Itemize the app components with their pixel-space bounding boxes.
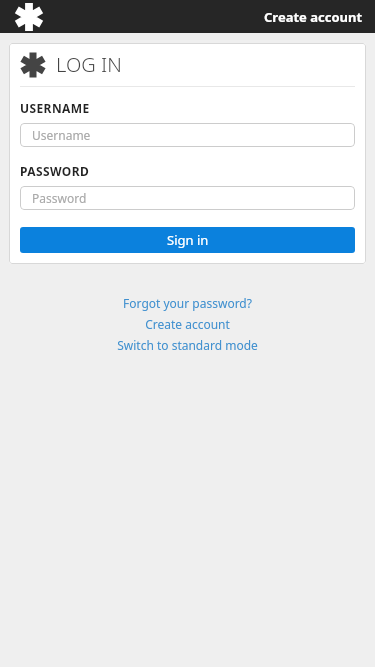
staticText: Switch to standard mode bbox=[117, 337, 258, 353]
button[interactable]: Forgot your password? bbox=[0, 295, 375, 311]
staticText: Create account bbox=[145, 316, 230, 332]
staticText: USERNAME bbox=[20, 100, 90, 116]
button[interactable]: Username bbox=[20, 123, 355, 147]
staticText: Create account bbox=[264, 8, 363, 26]
staticText: Forgot your password? bbox=[123, 295, 252, 311]
staticText: Sign in bbox=[167, 231, 209, 249]
button[interactable]: Create account bbox=[252, 2, 375, 32]
button[interactable]: Sign in bbox=[20, 227, 355, 253]
staticText: Username bbox=[32, 127, 91, 143]
staticText: Password bbox=[32, 190, 87, 206]
button[interactable]: Switch to standard mode bbox=[0, 337, 375, 353]
staticText: PASSWORD bbox=[20, 163, 90, 179]
button[interactable]: Create account bbox=[0, 316, 375, 332]
button[interactable]: Home bbox=[14, 2, 44, 32]
button[interactable]: Password bbox=[20, 186, 355, 210]
staticText: LOG IN bbox=[56, 51, 122, 78]
